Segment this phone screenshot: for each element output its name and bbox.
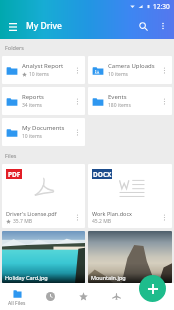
button[interactable]: Starred xyxy=(67,283,100,310)
staticText: 180 items xyxy=(108,102,131,109)
staticText: Work Plan.docx xyxy=(92,210,132,217)
staticText: 10 items xyxy=(29,71,50,78)
button[interactable]: Sent xyxy=(100,283,133,310)
staticText: 35.7 MB xyxy=(13,218,33,225)
button[interactable]: More options xyxy=(155,18,171,34)
button[interactable]: My Documents xyxy=(2,118,85,146)
button[interactable]: Camera Uploads xyxy=(88,56,172,84)
button[interactable]: Holiday Card.jpg xyxy=(2,231,85,283)
button[interactable]: Analyst Report xyxy=(2,56,85,84)
staticText: Driver's License.pdf xyxy=(6,210,57,217)
button[interactable]: Folder options xyxy=(158,95,171,108)
staticText: Reports xyxy=(22,93,44,101)
button[interactable]: All Files xyxy=(0,283,34,310)
button[interactable]: Folder options xyxy=(158,64,171,77)
staticText: 34 items xyxy=(22,102,43,109)
button[interactable]: Navigation menu xyxy=(4,18,21,35)
staticText: Folders xyxy=(5,44,24,51)
button[interactable]: Folder options xyxy=(71,126,84,139)
button[interactable]: Mountain.jpg xyxy=(88,231,172,283)
button[interactable]: Folder options xyxy=(71,64,84,77)
staticText: Mountain.jpg xyxy=(91,274,126,281)
button[interactable]: Events xyxy=(88,87,172,115)
button[interactable]: Folder options xyxy=(71,95,84,108)
staticText: PDF xyxy=(8,170,21,179)
staticText: Files xyxy=(5,152,17,159)
staticText: 10 items xyxy=(22,133,43,140)
button[interactable]: Reports xyxy=(2,87,85,115)
staticText: Analyst Report xyxy=(22,62,64,70)
staticText: All Files xyxy=(8,300,26,307)
staticText: 10 items xyxy=(108,71,129,78)
staticText: DOCX xyxy=(93,170,112,179)
staticText: My Drive xyxy=(26,20,62,32)
button[interactable]: Recent xyxy=(34,283,67,310)
button[interactable]: File options xyxy=(71,211,84,224)
button[interactable]: Add xyxy=(139,275,166,302)
button[interactable]: DOCX xyxy=(88,164,172,228)
staticText: 12:30 xyxy=(153,2,170,11)
staticText: Holiday Card.jpg xyxy=(5,274,48,281)
staticText: My Documents xyxy=(22,124,65,132)
button[interactable]: Search xyxy=(135,18,151,34)
staticText: Camera Uploads xyxy=(108,62,155,70)
staticText: 45.2 MB xyxy=(92,218,112,225)
button[interactable]: File options xyxy=(158,211,171,224)
staticText: Events xyxy=(108,93,127,101)
button[interactable]: PDF xyxy=(2,164,85,228)
